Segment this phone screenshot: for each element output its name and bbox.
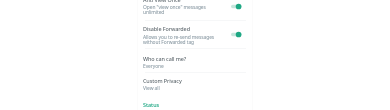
staticText: Allows you to re-send messages without F… — [143, 34, 215, 46]
staticText: Open "view once" messages unlimited — [143, 4, 206, 16]
button[interactable]: Disable Forwarded toggle — [230, 30, 244, 39]
staticText: Anti View Once — [143, 0, 181, 3]
staticText: Disable Forwarded — [143, 25, 190, 32]
button[interactable] — [137, 96, 253, 110]
staticText: Status — [143, 101, 160, 108]
staticText: View all — [143, 85, 160, 92]
button[interactable] — [137, 49, 253, 72]
button[interactable] — [137, 73, 253, 96]
staticText: Custom Privacy — [143, 77, 182, 84]
button[interactable] — [137, 0, 253, 20]
button[interactable] — [137, 21, 253, 48]
button[interactable]: Anti View Once toggle — [230, 2, 244, 11]
staticText: Who can call me? — [143, 55, 187, 62]
staticText: Everyone — [143, 63, 164, 70]
